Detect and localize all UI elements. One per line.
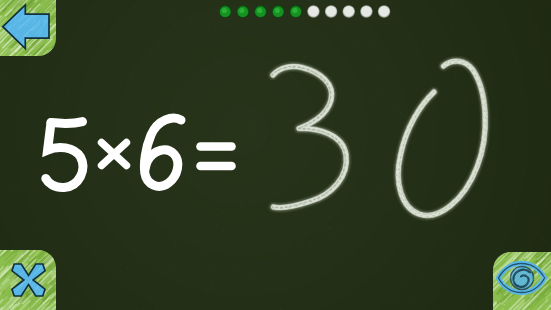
button[interactable]: Clear [0, 250, 56, 310]
button[interactable]: Back [0, 0, 56, 56]
button[interactable]: Show answer [493, 252, 551, 310]
